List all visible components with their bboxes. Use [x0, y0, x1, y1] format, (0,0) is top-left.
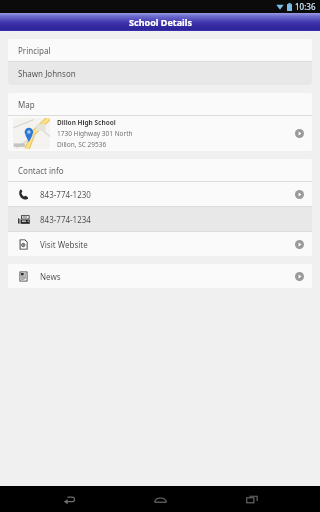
staticText: Contact info [18, 165, 64, 176]
button[interactable]: Fax 843-774-1234 [8, 207, 312, 231]
button[interactable]: Visit Website [8, 232, 312, 256]
staticText: 10:36 [295, 1, 316, 12]
button[interactable]: Shawn Johnson [8, 62, 312, 85]
staticText: Dillon High School [57, 118, 116, 127]
staticText: 843-774-1234 [40, 214, 91, 225]
staticText: 1730 Highway 301 North [57, 129, 133, 138]
button[interactable]: Open map [8, 116, 312, 151]
staticText: 843-774-1230 [40, 189, 91, 200]
staticText: Principal [18, 45, 51, 56]
staticText: Map [18, 99, 35, 110]
staticText: School Details [129, 16, 192, 28]
staticText: Dillon, SC 29536 [57, 140, 107, 149]
button[interactable]: Home [137, 486, 183, 512]
staticText: News [40, 271, 61, 282]
staticText: Shawn Johnson [18, 68, 76, 79]
button[interactable]: Call 843-774-1230 [8, 182, 312, 206]
staticText: Visit Website [40, 239, 88, 250]
button[interactable]: Back [46, 486, 92, 512]
button[interactable]: News [8, 264, 312, 288]
button[interactable]: Recents [229, 486, 275, 512]
